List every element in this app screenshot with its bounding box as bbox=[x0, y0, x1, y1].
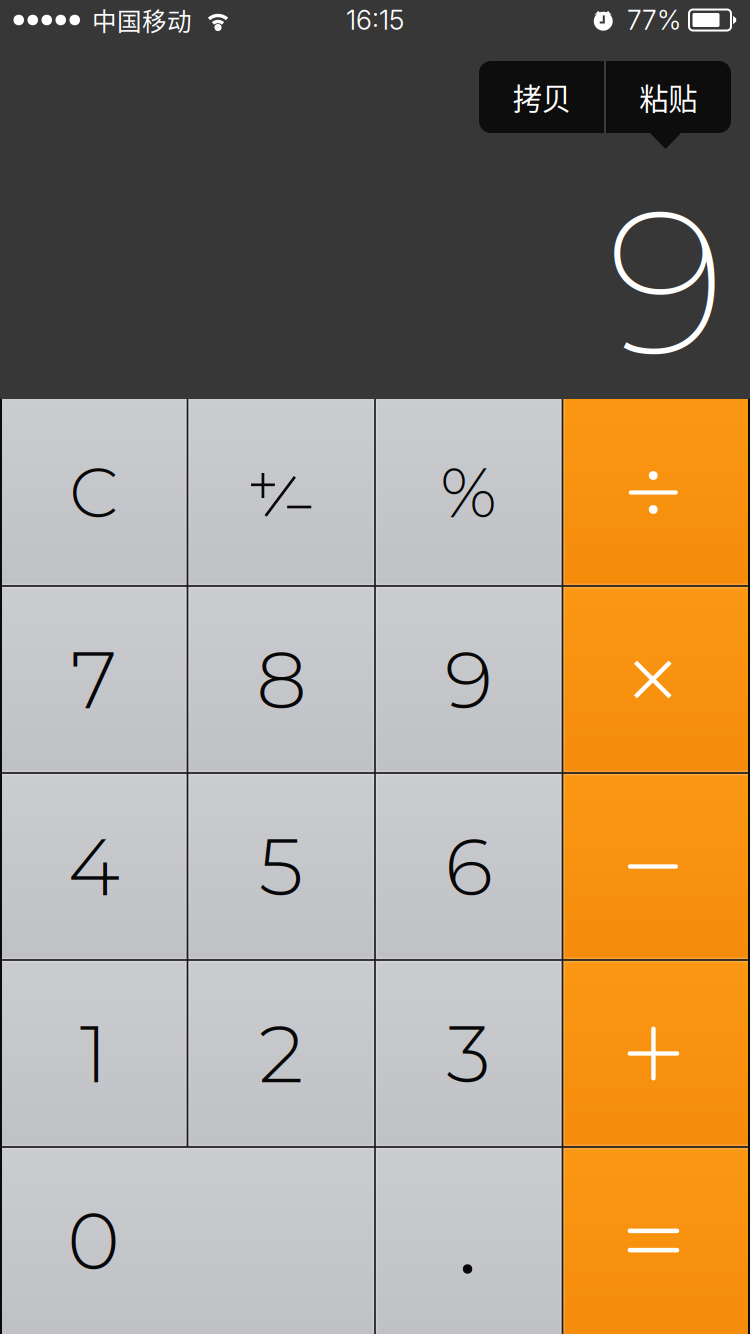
staticText: C bbox=[69, 450, 118, 535]
button[interactable]: Decimal point bbox=[375, 1147, 562, 1334]
staticText: 16:15 bbox=[346, 4, 404, 36]
button[interactable]: 5 bbox=[187, 773, 375, 960]
button[interactable]: 2 bbox=[187, 960, 375, 1147]
button[interactable]: 3 bbox=[375, 960, 562, 1147]
button[interactable]: Plus bbox=[562, 960, 750, 1147]
button[interactable]: 8 bbox=[187, 586, 375, 773]
button[interactable]: 7 bbox=[0, 586, 187, 773]
staticText: 拷贝 bbox=[513, 76, 571, 118]
staticText: 7 bbox=[71, 631, 117, 728]
staticText: 1 bbox=[80, 1005, 108, 1102]
button[interactable]: 拷贝 bbox=[479, 61, 604, 133]
button[interactable]: Multiply bbox=[562, 586, 750, 773]
button[interactable]: Minus bbox=[562, 773, 750, 960]
button[interactable]: C bbox=[0, 399, 187, 586]
staticText: 6 bbox=[445, 818, 493, 915]
staticText: 8 bbox=[256, 631, 306, 728]
staticText: 5 bbox=[259, 818, 304, 915]
button[interactable]: Divide bbox=[562, 399, 750, 586]
button[interactable]: % bbox=[375, 399, 562, 586]
button[interactable]: 粘贴 bbox=[606, 61, 731, 133]
button[interactable]: 4 bbox=[0, 773, 187, 960]
staticText: % bbox=[440, 450, 497, 535]
staticText: 2 bbox=[259, 1005, 304, 1102]
button[interactable]: Plus minus bbox=[187, 399, 375, 586]
staticText: 4 bbox=[68, 818, 120, 915]
staticText: 3 bbox=[446, 1005, 491, 1102]
staticText: 9 bbox=[607, 160, 726, 404]
staticText: 9 bbox=[445, 631, 493, 728]
button[interactable]: 0 bbox=[0, 1147, 375, 1334]
button[interactable]: 9 bbox=[375, 586, 562, 773]
staticText: 粘贴 bbox=[639, 76, 697, 118]
button[interactable]: 6 bbox=[375, 773, 562, 960]
staticText: 中国移动 bbox=[92, 2, 192, 38]
button[interactable]: 1 bbox=[0, 960, 187, 1147]
staticText: 77% bbox=[627, 4, 681, 36]
staticText: 0 bbox=[67, 1192, 120, 1289]
button[interactable]: Equals bbox=[562, 1147, 750, 1334]
